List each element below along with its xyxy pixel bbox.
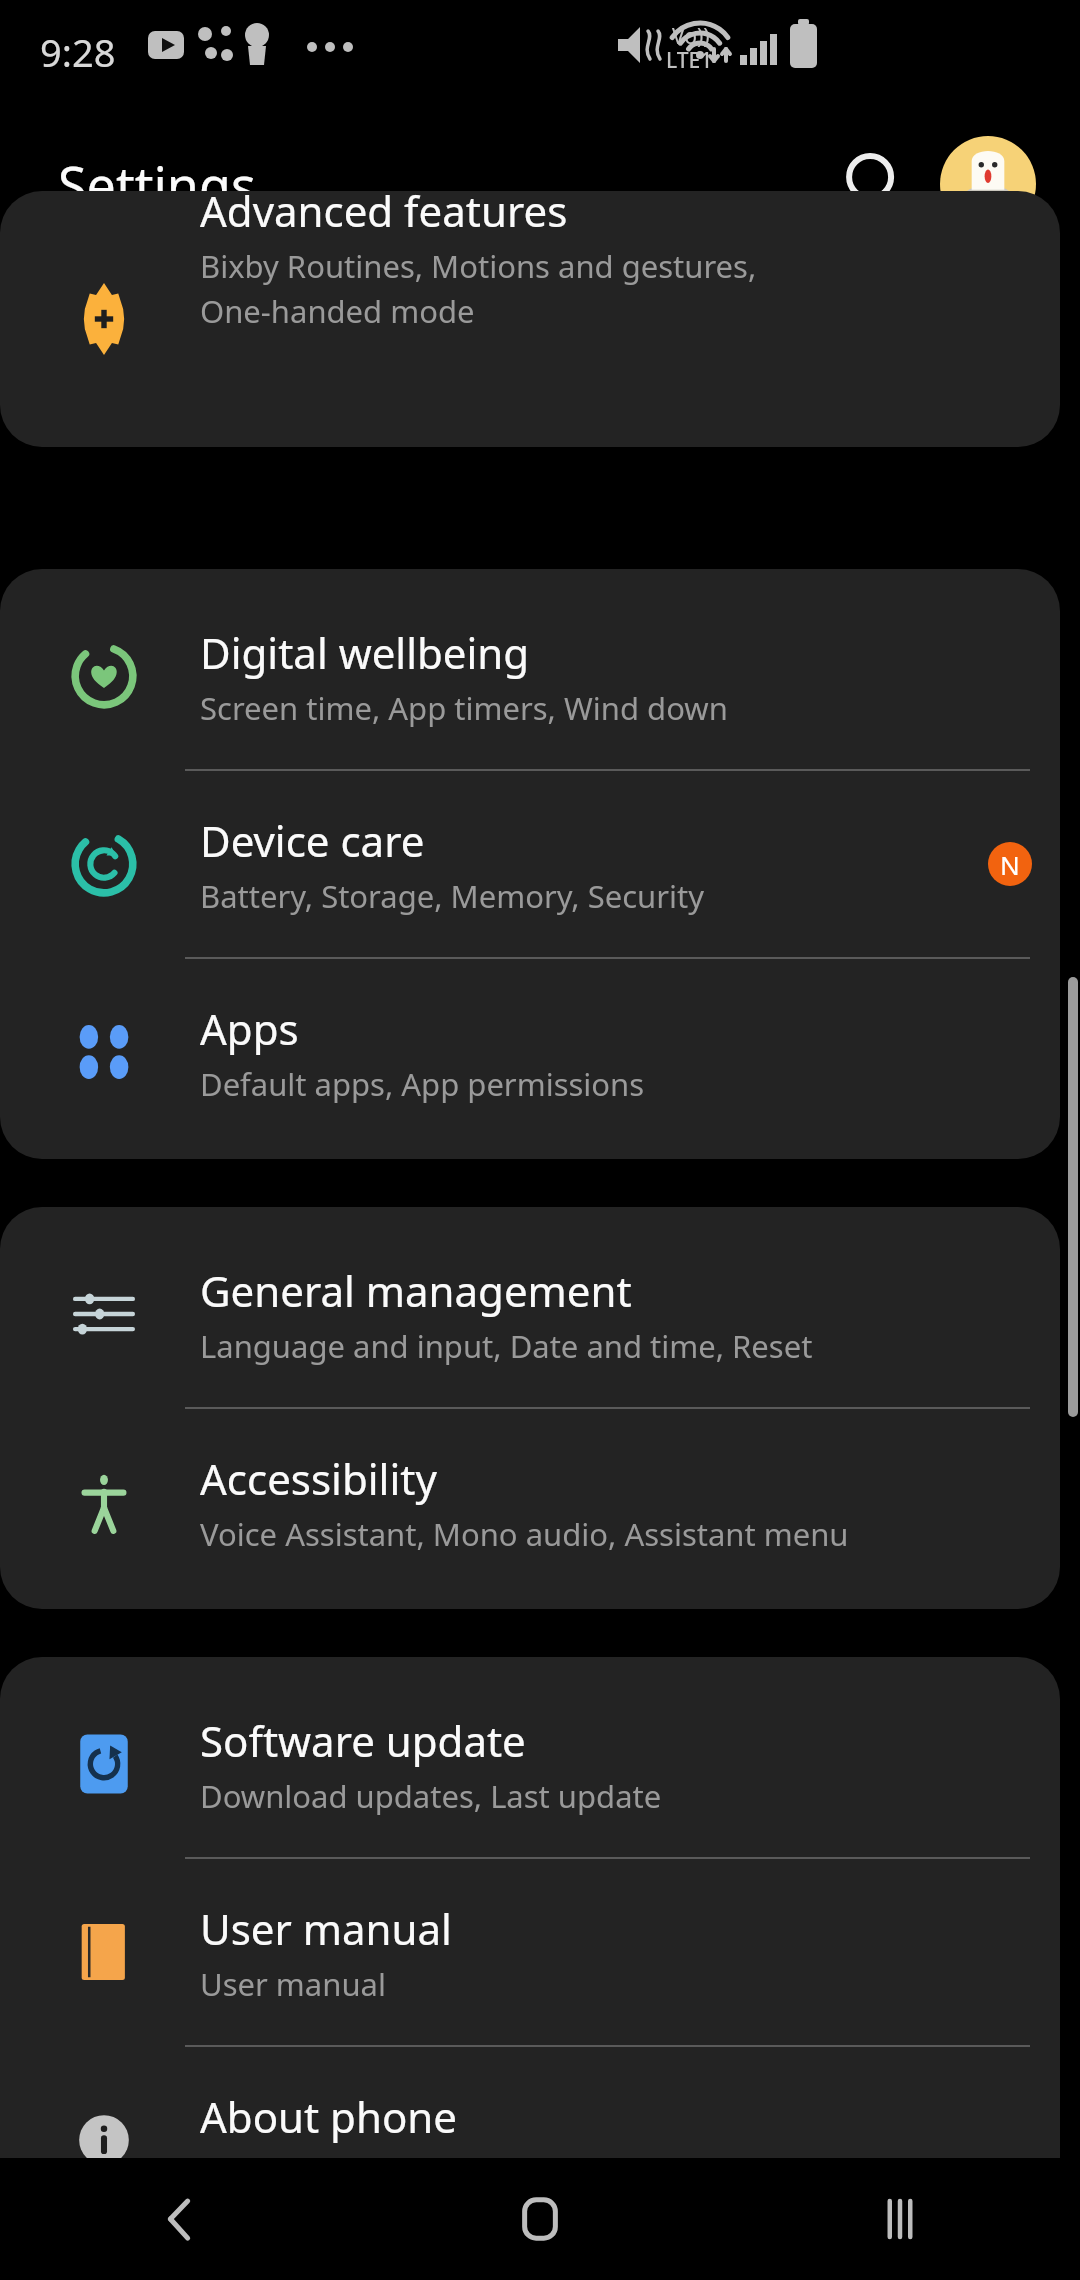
staticText: Battery, Storage, Memory, Security bbox=[200, 875, 705, 917]
button[interactable]: Recent apps bbox=[720, 2158, 1080, 2280]
staticText: Advanced features bbox=[200, 191, 568, 239]
staticText: Settings bbox=[58, 149, 256, 220]
staticText: Accessibility bbox=[200, 1450, 437, 1507]
button[interactable]: Back bbox=[0, 2158, 360, 2280]
button[interactable]: Account bbox=[940, 136, 1036, 232]
button[interactable]: Digital wellbeing bbox=[0, 583, 1060, 769]
staticText: User manual bbox=[200, 1963, 386, 2005]
staticText: General management bbox=[200, 1262, 632, 1319]
button[interactable]: Advanced features bbox=[0, 205, 1060, 433]
staticText: Status, Legal information, Phone name bbox=[200, 2151, 768, 2193]
button[interactable]: About phone bbox=[0, 2047, 1060, 2233]
staticText: LTE1 bbox=[666, 46, 713, 75]
staticText: N bbox=[1000, 847, 1020, 882]
button[interactable]: Apps bbox=[0, 959, 1060, 1145]
staticText: About phone bbox=[200, 2088, 457, 2145]
staticText: Download updates, Last update bbox=[200, 1775, 662, 1817]
staticText: Apps bbox=[200, 1000, 299, 1057]
button[interactable]: Home bbox=[360, 2158, 720, 2280]
button[interactable]: General management bbox=[0, 1221, 1060, 1407]
button[interactable]: Software update bbox=[0, 1671, 1060, 1857]
staticText: Language and input, Date and time, Reset bbox=[200, 1325, 813, 1367]
staticText: Device care bbox=[200, 812, 425, 869]
staticText: Software update bbox=[200, 1712, 526, 1769]
staticText: Default apps, App permissions bbox=[200, 1063, 645, 1105]
button[interactable]: Accessibility bbox=[0, 1409, 1060, 1595]
staticText: Screen time, App timers, Wind down bbox=[200, 687, 728, 729]
staticText: Voice Assistant, Mono audio, Assistant m… bbox=[200, 1513, 849, 1555]
staticText: Vo)) bbox=[672, 22, 710, 51]
button[interactable]: Device care bbox=[0, 771, 1060, 957]
staticText: Digital wellbeing bbox=[200, 624, 530, 681]
button[interactable]: User manual bbox=[0, 1859, 1060, 2045]
button[interactable]: Search bbox=[820, 129, 930, 239]
staticText: Bixby Routines, Motions and gestures, On… bbox=[200, 245, 757, 332]
staticText: 9:28 bbox=[40, 26, 116, 78]
staticText: User manual bbox=[200, 1900, 452, 1957]
